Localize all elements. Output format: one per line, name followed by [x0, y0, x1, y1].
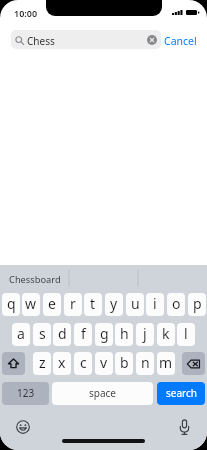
staticText: w	[25, 294, 37, 313]
button[interactable]: Dictation	[174, 417, 194, 437]
staticText: 123	[17, 386, 35, 400]
button[interactable]: q	[2, 293, 20, 316]
button[interactable]: k	[157, 323, 175, 346]
button[interactable]: Backspace	[182, 352, 205, 375]
staticText: space	[89, 386, 116, 400]
button[interactable]: a	[12, 323, 30, 346]
staticText: e	[48, 294, 56, 313]
button[interactable]: y	[105, 293, 123, 316]
button[interactable]: o	[167, 293, 185, 316]
staticText: q	[7, 294, 16, 313]
button[interactable]: r	[64, 293, 82, 316]
button[interactable]: s	[33, 323, 51, 346]
button[interactable]: e	[43, 293, 61, 316]
staticText: s	[39, 324, 46, 343]
button[interactable]: search	[157, 382, 205, 405]
staticText: y	[110, 294, 118, 313]
staticText: c	[80, 353, 87, 372]
button[interactable]: Shift	[2, 352, 25, 375]
staticText: t	[90, 294, 96, 313]
button[interactable]: Clear text	[147, 35, 157, 45]
staticText: k	[162, 324, 170, 343]
button[interactable]: d	[53, 323, 71, 346]
staticText: Chess	[27, 34, 55, 48]
staticText: l	[184, 324, 188, 343]
button[interactable]: b	[115, 352, 133, 375]
staticText: i	[153, 294, 157, 313]
staticText: h	[120, 324, 129, 343]
button[interactable]: 123	[2, 382, 49, 405]
staticText: r	[70, 294, 76, 313]
button[interactable]: l	[177, 323, 195, 346]
staticText: z	[39, 353, 46, 372]
staticText: d	[58, 324, 67, 343]
button[interactable]: f	[74, 323, 92, 346]
button[interactable]: v	[95, 352, 113, 375]
button[interactable]: w	[22, 293, 40, 316]
button[interactable]: Cancel	[161, 30, 196, 49]
button[interactable]: t	[84, 293, 102, 316]
staticText: j	[143, 324, 147, 343]
staticText: m	[159, 353, 173, 372]
button[interactable]: Chessboard	[0, 268, 69, 290]
staticText: x	[58, 353, 66, 372]
staticText: 10:00	[14, 7, 38, 19]
button[interactable]: p	[188, 293, 206, 316]
button[interactable]: z	[33, 352, 51, 375]
button[interactable]: n	[136, 352, 154, 375]
staticText: g	[100, 324, 109, 343]
button[interactable]: m	[157, 352, 175, 375]
button[interactable]: x	[53, 352, 71, 375]
staticText: search	[166, 386, 197, 400]
button[interactable]: g	[95, 323, 113, 346]
button[interactable]: h	[115, 323, 133, 346]
staticText: u	[131, 294, 140, 313]
staticText: v	[100, 353, 108, 372]
button[interactable]: i	[146, 293, 164, 316]
staticText: f	[81, 324, 86, 343]
staticText: b	[120, 353, 129, 372]
staticText: Cancel	[164, 34, 197, 48]
button[interactable]: Chess	[11, 30, 161, 49]
staticText: p	[193, 294, 202, 313]
button[interactable]: space	[52, 382, 153, 405]
staticText: n	[141, 353, 150, 372]
button[interactable]: c	[74, 352, 92, 375]
button[interactable]: Emoji keyboard	[13, 417, 33, 437]
staticText: a	[17, 324, 25, 343]
button[interactable]: u	[126, 293, 144, 316]
button[interactable]: j	[136, 323, 154, 346]
staticText: o	[172, 294, 181, 313]
staticText: Chessboard	[9, 273, 61, 286]
